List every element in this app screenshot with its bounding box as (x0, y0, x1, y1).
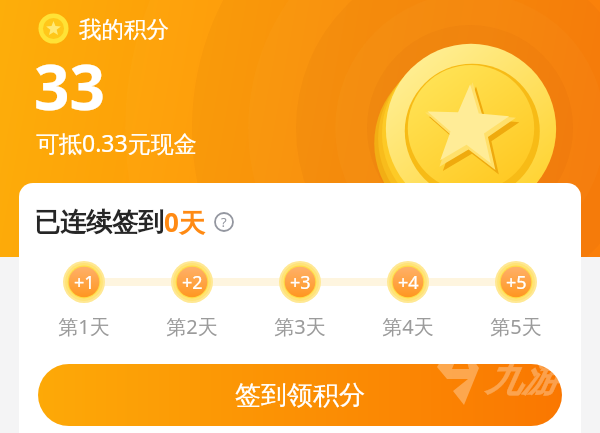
staticText: +2 (182, 270, 203, 295)
staticText: 我的积分 (79, 15, 169, 43)
button[interactable]: Help (214, 212, 234, 232)
staticText: +3 (290, 270, 311, 295)
staticText: 第1天 (58, 313, 110, 340)
staticText: 33 (34, 44, 105, 128)
staticText: 第3天 (274, 313, 326, 340)
staticText: +4 (398, 270, 419, 295)
button[interactable]: 签到领积分 (38, 364, 562, 426)
staticText: ? (221, 213, 227, 231)
staticText: 第2天 (166, 313, 218, 340)
staticText: 第5天 (490, 313, 542, 340)
button[interactable]: Day 1 reward (63, 261, 105, 303)
staticText: 已连续签到 (34, 206, 164, 239)
button[interactable]: Day 4 reward (387, 261, 429, 303)
staticText: 可抵0.33元现金 (36, 127, 197, 158)
staticText: 签到领积分 (235, 379, 365, 412)
staticText: 九游 (485, 355, 559, 402)
staticText: 0天 (164, 204, 205, 240)
button[interactable]: Day 3 reward (279, 261, 321, 303)
staticText: +1 (74, 270, 95, 295)
button[interactable]: Day 2 reward (171, 261, 213, 303)
button[interactable]: Day 5 reward (495, 261, 537, 303)
staticText: 第4天 (382, 313, 434, 340)
staticText: +5 (506, 270, 527, 295)
